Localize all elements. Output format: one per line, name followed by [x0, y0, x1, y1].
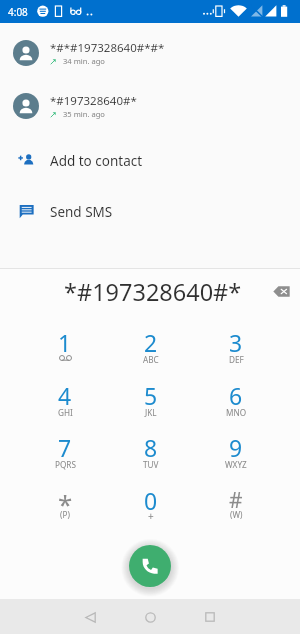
staticText: +	[148, 509, 154, 523]
staticText: Add to contact	[50, 152, 143, 170]
button[interactable]: *#197328640#*	[0, 79, 300, 132]
staticText: 1	[58, 327, 72, 358]
button[interactable]: Send SMS	[0, 185, 300, 237]
button[interactable]: 8	[109, 423, 193, 475]
staticText: TUV	[143, 459, 159, 470]
staticText: ABC	[143, 354, 159, 365]
button[interactable]: 1	[23, 318, 107, 370]
staticText: #	[229, 486, 243, 515]
staticText: 5	[144, 380, 158, 411]
staticText: GHI	[58, 407, 73, 418]
staticText: *#197328640#*	[64, 276, 242, 308]
staticText: DEF	[229, 354, 244, 365]
button[interactable]: #	[194, 476, 278, 528]
button[interactable]: *	[23, 476, 107, 528]
staticText: (P)	[60, 509, 70, 520]
button[interactable]: Home	[134, 601, 166, 633]
button[interactable]: 4	[23, 371, 107, 423]
staticText: PQRS	[55, 459, 76, 470]
staticText: 34 min. ago	[63, 56, 105, 66]
button[interactable]: Call	[129, 545, 171, 587]
staticText: Send SMS	[50, 203, 113, 221]
staticText: 0	[144, 485, 158, 516]
button[interactable]: Backspace	[268, 279, 294, 305]
button[interactable]: Recents	[194, 601, 226, 633]
staticText: 9	[229, 432, 243, 463]
staticText: *#197328640#*	[50, 93, 137, 109]
staticText: 7	[58, 432, 72, 463]
staticText: (W)	[230, 509, 243, 520]
staticText: 4	[58, 380, 72, 411]
button[interactable]: *#*#197328640#*#*	[0, 26, 300, 79]
button[interactable]: 6	[194, 371, 278, 423]
button[interactable]: Add to contact	[0, 134, 300, 186]
staticText: 2	[144, 327, 158, 358]
staticText: WXYZ	[225, 459, 247, 470]
staticText: MNO	[226, 407, 247, 418]
staticText: 4:08	[8, 5, 28, 19]
button[interactable]: Back	[74, 601, 106, 633]
button[interactable]: 9	[194, 423, 278, 475]
staticText: 3	[229, 327, 243, 358]
staticText: 6	[229, 380, 243, 411]
button[interactable]: 3	[194, 318, 278, 370]
button[interactable]: 0	[109, 476, 193, 528]
staticText: 35 min. ago	[63, 109, 105, 119]
button[interactable]: 5	[109, 371, 193, 423]
staticText: 8	[144, 432, 158, 463]
staticText: *#*#197328640#*#*	[50, 40, 165, 56]
button[interactable]: 7	[23, 423, 107, 475]
button[interactable]: 2	[109, 318, 193, 370]
staticText: *	[58, 486, 73, 521]
staticText: JKL	[145, 407, 157, 418]
